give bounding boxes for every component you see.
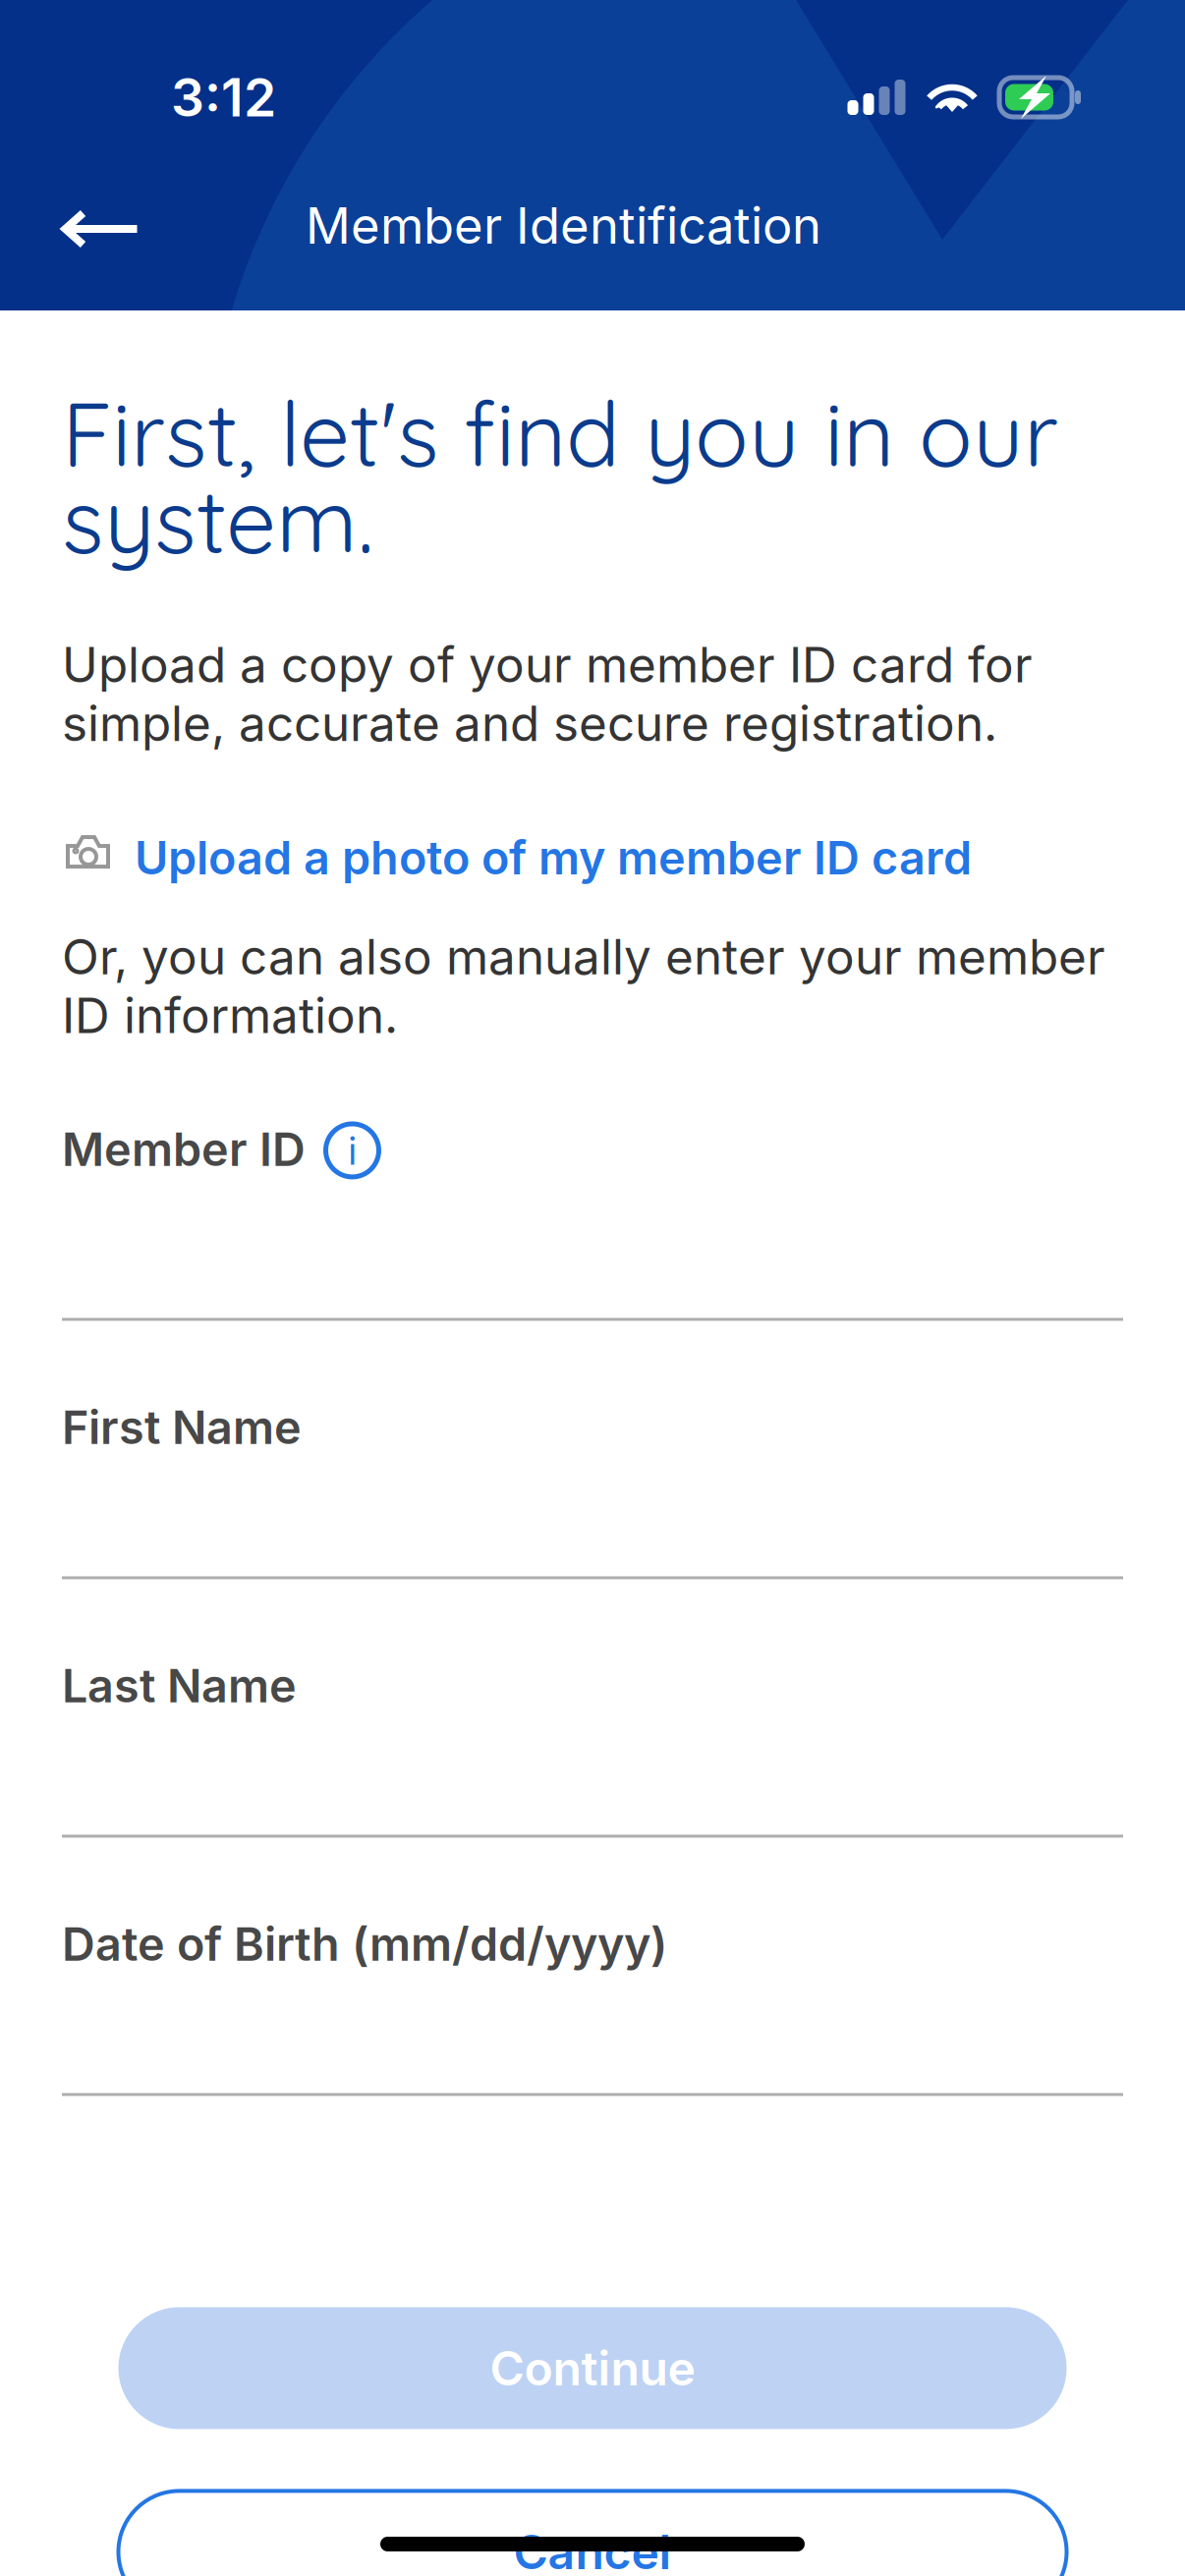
staticText: Upload a photo of my member ID card: [135, 830, 972, 885]
button[interactable]: Upload a photo of my member ID card: [62, 827, 1123, 888]
staticText: Date of Birth (mm/dd/yyyy): [62, 1916, 667, 1972]
button[interactable]: Member ID information: [62, 1121, 381, 1179]
staticText: i: [348, 1127, 356, 1174]
button[interactable]: Cancel: [118, 2491, 1067, 2576]
button[interactable]: Back: [0, 174, 202, 284]
staticText: Or, you can also manually enter your mem…: [62, 927, 1105, 1045]
staticText: First, let's find you in our system.: [62, 377, 1058, 575]
staticText: Upload a copy of your member ID card for…: [62, 635, 1033, 753]
staticText: Cancel: [513, 2523, 672, 2576]
staticText: Member Identification: [306, 196, 821, 256]
staticText: First Name: [62, 1399, 302, 1455]
staticText: Continue: [490, 2340, 695, 2397]
staticText: 3:12: [171, 66, 276, 129]
staticText: Last Name: [62, 1658, 297, 1713]
button[interactable]: Continue: [118, 2307, 1067, 2429]
staticText: Member ID: [62, 1121, 306, 1177]
